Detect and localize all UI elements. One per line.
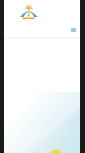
button[interactable]: App logo bbox=[20, 2, 37, 20]
button[interactable]: Action bbox=[71, 28, 76, 32]
